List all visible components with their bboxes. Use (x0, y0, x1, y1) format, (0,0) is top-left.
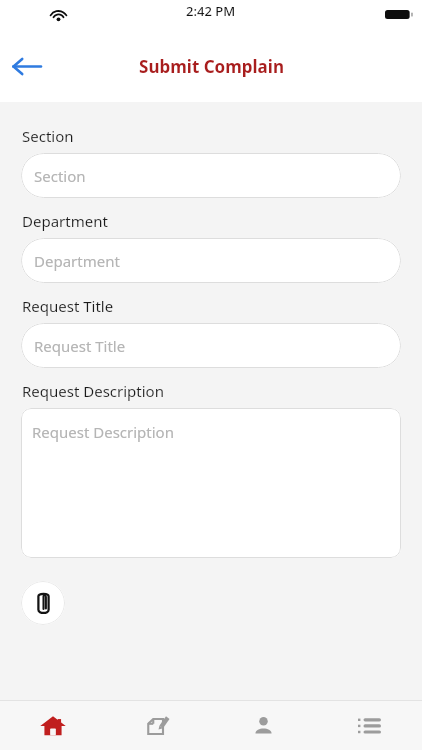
staticText: Request Title (22, 296, 114, 316)
staticText: Request Description (22, 381, 164, 401)
button[interactable]: Home (0, 701, 105, 750)
staticText: Request Description (32, 422, 174, 442)
button[interactable]: Section (21, 153, 401, 198)
button[interactable]: Profile (210, 701, 316, 750)
button[interactable]: List (316, 701, 422, 750)
button[interactable]: Department (21, 238, 401, 283)
staticText: Section (34, 166, 86, 186)
staticText: Request Title (34, 336, 126, 356)
staticText: Submit Complain (139, 55, 284, 78)
button[interactable]: Attach file (21, 581, 65, 625)
staticText: 2:42 PM (186, 2, 236, 20)
button[interactable]: Back (5, 44, 49, 88)
button[interactable]: Request Description (21, 408, 401, 558)
button[interactable]: Request Title (21, 323, 401, 368)
staticText: Department (34, 251, 120, 271)
staticText: Section (22, 126, 74, 146)
staticText: Department (22, 211, 108, 231)
button[interactable]: New request (105, 701, 210, 750)
